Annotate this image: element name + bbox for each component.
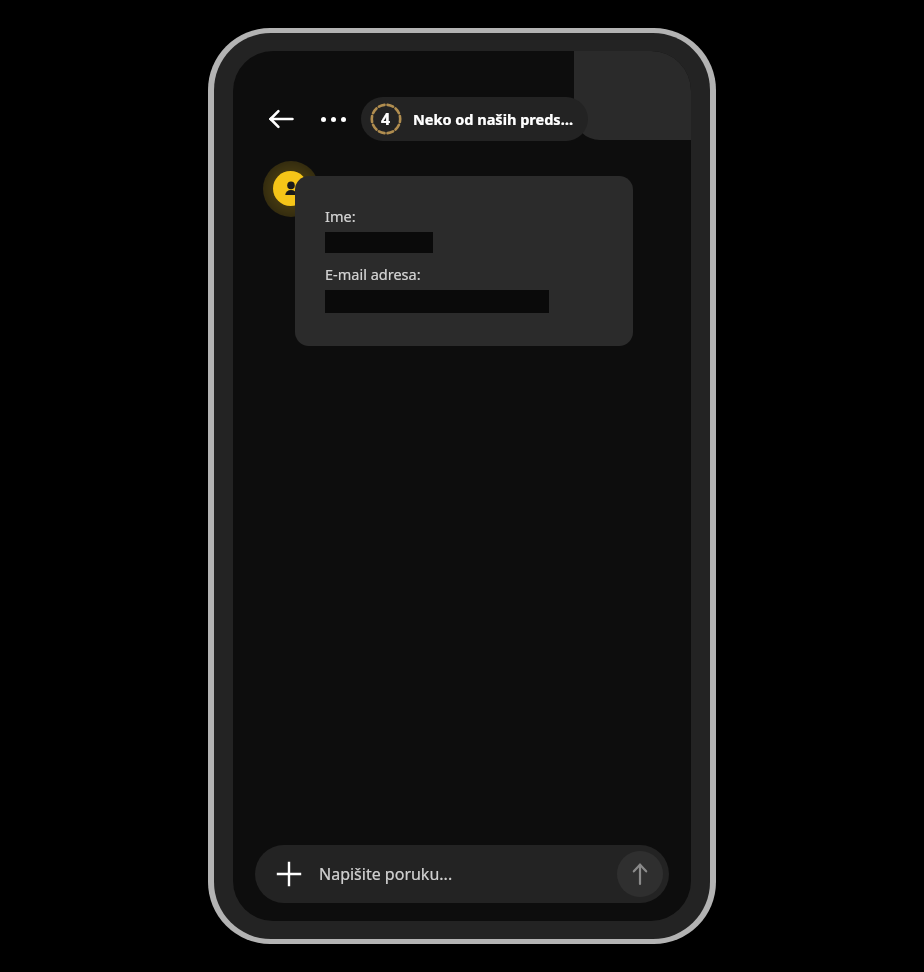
button[interactable]: Add attachment	[255, 845, 669, 903]
button[interactable]: Back	[257, 95, 305, 143]
button[interactable]: Sender avatar	[273, 171, 308, 206]
button[interactable]: Ime:	[295, 176, 633, 346]
button[interactable]: More options	[309, 95, 357, 143]
button[interactable]: Send	[617, 851, 663, 897]
button[interactable]: 4	[361, 97, 588, 141]
staticText: Ime:	[325, 206, 356, 226]
button[interactable]: Add attachment	[271, 856, 307, 892]
staticText: Napišite poruku...	[319, 863, 453, 885]
staticText: Neko od naših predst…	[413, 109, 576, 129]
staticText: 4	[381, 108, 391, 130]
staticText: E-mail adresa:	[325, 264, 421, 284]
